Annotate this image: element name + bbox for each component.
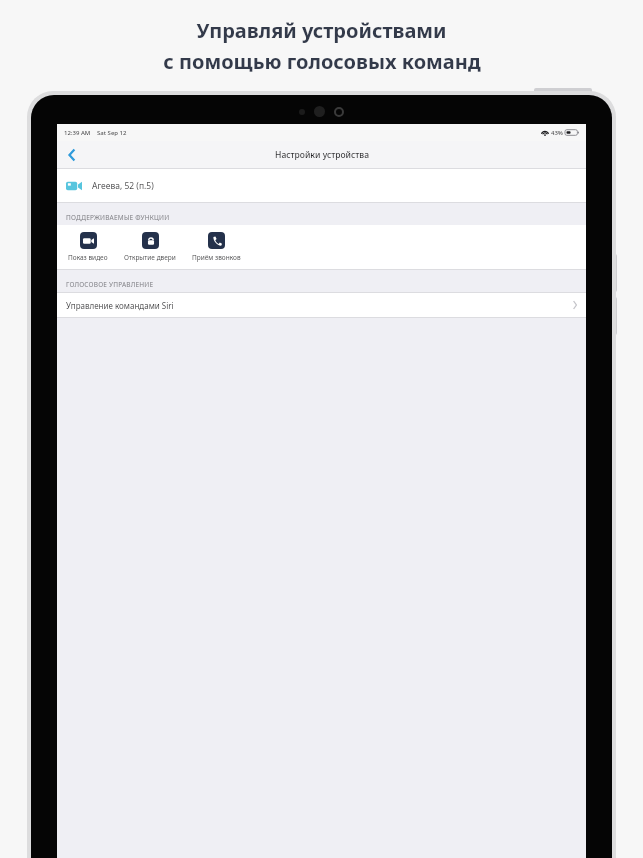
button[interactable]: Назад: [59, 141, 85, 168]
staticText: Sat Sep 12: [97, 129, 127, 137]
staticText: Открытие двери: [124, 253, 176, 262]
staticText: ПОДДЕРЖИВАЕМЫЕ ФУНКЦИИ: [66, 213, 170, 222]
staticText: Приём звонков: [192, 253, 241, 262]
staticText: Управляй устройствами: [196, 17, 447, 44]
button[interactable]: Открытие двери: [122, 232, 178, 262]
button[interactable]: Приём звонков: [190, 232, 243, 262]
staticText: 12:39 AM: [64, 129, 91, 137]
staticText: Показ видео: [68, 253, 108, 262]
staticText: с помощью голосовых команд: [163, 48, 481, 75]
button[interactable]: Агеева, 52 (п.5): [57, 169, 586, 202]
button[interactable]: Показ видео: [66, 232, 110, 262]
staticText: Настройки устройства: [275, 149, 369, 161]
staticText: Агеева, 52 (п.5): [92, 180, 154, 192]
button[interactable]: Управление командами Siri: [57, 293, 586, 317]
staticText: Управление командами Siri: [66, 300, 174, 311]
staticText: ГОЛОСОВОЕ УПРАВЛЕНИЕ: [66, 280, 154, 289]
staticText: 43%: [551, 129, 563, 137]
